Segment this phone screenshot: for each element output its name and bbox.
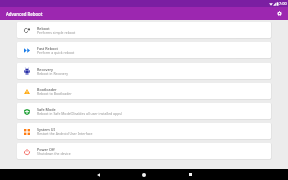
staticText: Bootloader <box>37 87 57 92</box>
button[interactable]: Bootloader <box>17 83 271 99</box>
button[interactable]: Power Off <box>17 143 271 159</box>
button[interactable]: Recovery <box>17 63 271 79</box>
button[interactable]: Reboot <box>17 22 271 38</box>
staticText: Advanced Reboot <box>6 11 43 17</box>
button[interactable]: Settings <box>274 8 285 19</box>
button[interactable]: Recents <box>167 169 213 180</box>
staticText: Performs simple reboot <box>37 30 76 35</box>
staticText: 7:00 <box>279 1 287 6</box>
staticText: Power Off <box>37 147 55 152</box>
staticText: Recovery <box>37 67 54 72</box>
button[interactable]: Back <box>75 169 121 180</box>
staticText: Safe Mode <box>37 107 56 112</box>
button[interactable]: Fast Reboot <box>17 42 271 58</box>
staticText: Restart the Android User Interface <box>37 131 93 136</box>
button[interactable]: Safe Mode <box>17 103 271 119</box>
button[interactable]: System UI <box>17 123 271 139</box>
button[interactable]: Home <box>121 169 167 180</box>
staticText: System UI <box>37 127 55 132</box>
staticText: Perform a quick reboot <box>37 50 75 55</box>
staticText: Reboot in Recovery <box>37 71 68 76</box>
staticText: Reboot to Bootloader <box>37 91 72 96</box>
staticText: Shutdown the device <box>37 151 71 156</box>
staticText: Reboot <box>37 26 50 31</box>
staticText: Reboot in Safe Mode(Disables all user in… <box>37 111 122 116</box>
staticText: Fast Reboot <box>37 46 58 51</box>
